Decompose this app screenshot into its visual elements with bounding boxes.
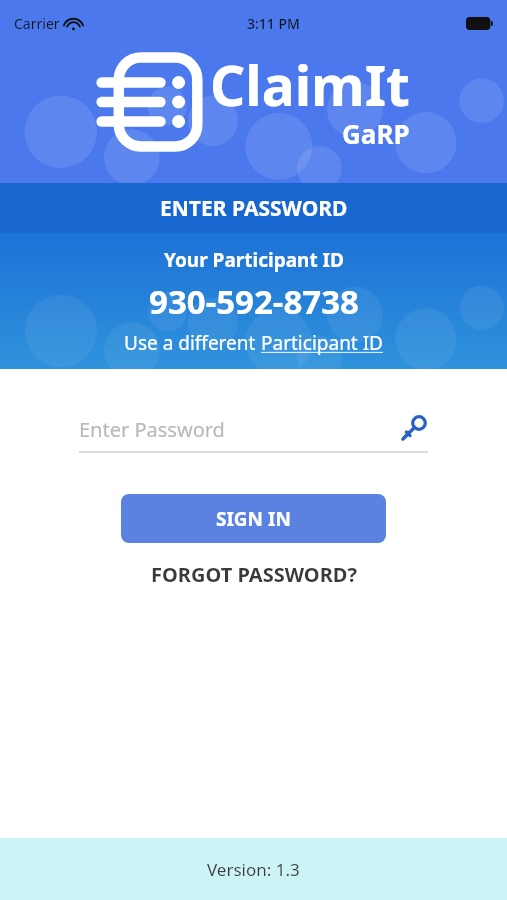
staticText: Use a different xyxy=(124,330,261,356)
staticText: 3:11 PM xyxy=(247,14,300,33)
button[interactable]: SIGN IN xyxy=(121,494,386,543)
staticText: FORGOT PASSWORD? xyxy=(151,561,357,588)
staticText: Enter Password xyxy=(79,416,225,443)
button[interactable]: Enter Password xyxy=(79,405,428,453)
staticText: SIGN IN xyxy=(216,506,291,532)
staticText: ENTER PASSWORD xyxy=(160,194,348,223)
button[interactable]: Show password xyxy=(398,414,428,444)
staticText: Participant ID xyxy=(261,330,383,356)
staticText: Your Participant ID xyxy=(164,247,344,273)
staticText: GaRP xyxy=(342,116,410,151)
staticText: 930-592-8738 xyxy=(149,279,359,324)
staticText: Carrier xyxy=(14,14,60,33)
staticText: ClaimIt xyxy=(210,47,410,122)
button[interactable]: Participant ID xyxy=(261,330,383,356)
staticText: Version: 1.3 xyxy=(207,858,300,881)
button[interactable]: FORGOT PASSWORD? xyxy=(145,555,363,594)
